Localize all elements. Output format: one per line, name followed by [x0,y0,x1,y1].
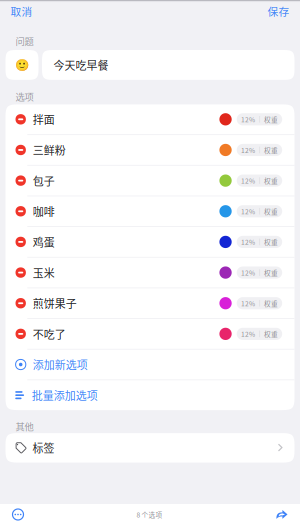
staticText: 咖啡 [33,203,55,219]
staticText: 权重 [264,145,278,155]
button[interactable]: 玉米 [5,258,294,288]
staticText: 12% [241,268,255,277]
button[interactable]: More [0,504,34,524]
button[interactable]: 拌面 [5,104,294,134]
staticText: 选项 [15,90,33,103]
staticText: 不吃了 [33,326,66,342]
button[interactable]: 保存 [259,0,300,24]
staticText: 权重 [264,176,278,185]
staticText: 8 个选项 [136,510,162,519]
button[interactable]: 三鲜粉 [5,135,294,165]
staticText: 今天吃早餐 [53,57,108,73]
staticText: 玉米 [33,265,55,280]
staticText: 权重 [264,329,278,339]
staticText: 取消 [10,3,32,19]
staticText: 12% [241,145,255,155]
staticText: 其他 [15,419,33,433]
staticText: 批量添加选项 [32,387,98,403]
staticText: 煎饼果子 [33,295,77,311]
button[interactable]: 咖啡 [5,196,294,226]
button[interactable]: 鸡蛋 [5,227,294,257]
button[interactable]: 标签 [5,433,294,463]
button[interactable]: 包子 [5,166,294,196]
button[interactable]: 不吃了 [5,319,294,349]
button[interactable]: 煎饼果子 [5,288,294,318]
staticText: 标签 [33,440,55,456]
staticText: 12% [241,329,255,339]
staticText: 拌面 [33,111,55,127]
staticText: 保存 [267,3,289,19]
staticText: 12% [241,206,255,216]
staticText: 包子 [33,173,55,188]
staticText: 权重 [264,206,278,216]
staticText: 🙂 [15,58,29,72]
staticText: 鸡蛋 [33,234,55,250]
staticText: 问题 [15,34,33,48]
staticText: 12% [241,237,255,247]
staticText: 12% [241,176,255,185]
staticText: 权重 [264,114,278,124]
staticText: 权重 [264,268,278,277]
button[interactable]: 批量添加选项 [5,380,294,410]
staticText: 权重 [264,237,278,247]
staticText: 12% [241,114,255,124]
button[interactable]: 添加新选项 [5,350,294,379]
button[interactable]: Share [265,505,300,523]
staticText: 权重 [264,298,278,308]
staticText: 12% [241,298,255,308]
staticText: 添加新选项 [33,357,88,372]
button[interactable]: 取消 [0,0,40,24]
staticText: 三鲜粉 [33,142,66,158]
